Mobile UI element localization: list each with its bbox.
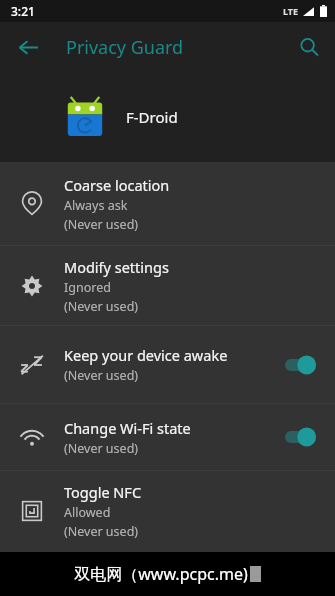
staticText: (Never used) bbox=[64, 367, 139, 384]
staticText: Change Wi-Fi state bbox=[64, 418, 191, 438]
staticText: (Never used) bbox=[64, 440, 139, 457]
staticText: LTE bbox=[283, 5, 299, 17]
staticText: Toggle NFC bbox=[64, 482, 142, 502]
staticText: 3:21 bbox=[11, 3, 35, 19]
button[interactable]: Change Wi-Fi state bbox=[0, 404, 335, 470]
staticText: Allowed bbox=[64, 504, 111, 521]
button[interactable]: Toggle NFC bbox=[0, 471, 335, 551]
button[interactable]: Toggle Keep your device awake bbox=[271, 326, 335, 403]
button[interactable]: Keep your device awake bbox=[0, 326, 335, 403]
button[interactable]: Toggle Change Wi-Fi state bbox=[271, 404, 335, 470]
staticText: Privacy Guard bbox=[66, 35, 184, 60]
staticText: F-Droid bbox=[126, 107, 178, 127]
staticText: Modify settings bbox=[64, 257, 169, 277]
button[interactable]: Search bbox=[289, 27, 329, 67]
button[interactable]: Modify settings bbox=[0, 246, 335, 325]
button[interactable]: Coarse location bbox=[0, 162, 335, 245]
staticText: (Never used) bbox=[64, 216, 139, 233]
staticText: (Never used) bbox=[64, 523, 139, 540]
button[interactable]: Back bbox=[8, 27, 48, 67]
button[interactable]: F-Droid bbox=[0, 72, 335, 162]
staticText: Keep your device awake bbox=[64, 345, 228, 365]
staticText: Always ask bbox=[64, 197, 128, 214]
staticText: 双电网（www.pcpc.me) bbox=[74, 563, 248, 585]
staticText: Ignored bbox=[64, 279, 111, 296]
staticText: (Never used) bbox=[64, 298, 139, 315]
staticText: Coarse location bbox=[64, 175, 170, 195]
